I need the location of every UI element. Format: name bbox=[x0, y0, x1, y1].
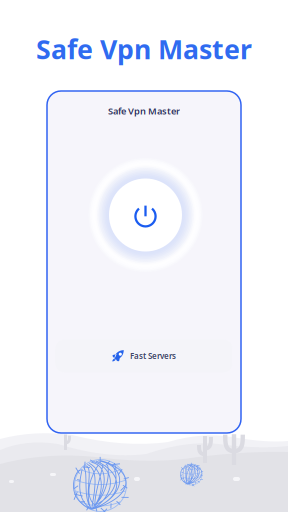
staticText: Safe Vpn Master bbox=[36, 31, 252, 67]
staticText: Safe Vpn Master bbox=[108, 105, 180, 117]
button[interactable]: Connect bbox=[88, 158, 202, 272]
staticText: Fast Servers bbox=[130, 351, 176, 361]
button[interactable]: Fast Servers bbox=[55, 339, 232, 372]
